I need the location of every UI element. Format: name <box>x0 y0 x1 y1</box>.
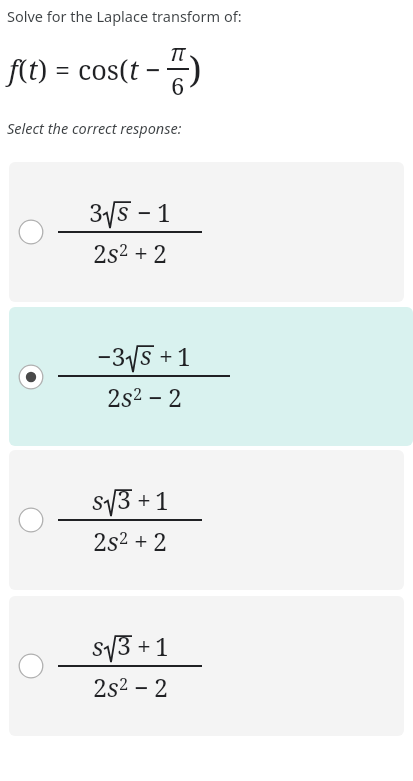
staticText: s <box>107 236 119 270</box>
staticText: + <box>134 524 148 558</box>
staticText: 2 <box>119 238 129 260</box>
staticText: π <box>170 36 186 68</box>
staticText: −3 <box>97 339 126 373</box>
staticText: Solve for the Laplace transform of: <box>7 6 242 26</box>
staticText: ( <box>18 51 28 88</box>
staticText: 3 <box>89 195 103 229</box>
staticText: 2 <box>153 524 167 558</box>
staticText: − <box>137 195 152 229</box>
staticText: 2 <box>107 380 121 414</box>
staticText: 6 <box>171 70 185 102</box>
staticText: = <box>55 51 71 88</box>
staticText: 2 <box>93 524 107 558</box>
staticText: 2 <box>168 380 182 414</box>
staticText: s <box>92 629 104 663</box>
staticText: s <box>92 483 104 517</box>
staticText: 2 <box>119 672 129 694</box>
staticText: + <box>159 339 173 373</box>
staticText: ) <box>189 44 202 94</box>
staticText: 2 <box>133 382 143 404</box>
staticText: s <box>117 194 129 228</box>
staticText: Select the correct response: <box>7 118 182 138</box>
button[interactable]: s <box>9 450 404 590</box>
staticText: − <box>134 670 149 704</box>
staticText: 1 <box>157 195 171 229</box>
staticText: s <box>107 524 119 558</box>
staticText: 3 <box>117 482 131 516</box>
staticText: 2 <box>93 236 107 270</box>
staticText: 2 <box>93 670 107 704</box>
button[interactable]: s <box>9 596 404 736</box>
staticText: − <box>148 380 163 414</box>
staticText: + <box>137 483 151 517</box>
staticText: cos( <box>78 51 129 88</box>
button[interactable]: −3 <box>9 307 413 446</box>
staticText: 2 <box>154 670 168 704</box>
staticText: 1 <box>155 629 169 663</box>
staticText: 1 <box>177 339 191 373</box>
staticText: 2 <box>119 526 129 548</box>
staticText: s <box>107 670 119 704</box>
staticText: + <box>137 629 151 663</box>
staticText: s <box>140 338 152 372</box>
staticText: ) <box>38 51 48 88</box>
button[interactable]: 3 <box>9 162 404 302</box>
staticText: 3 <box>117 628 131 662</box>
staticText: − <box>145 51 161 88</box>
staticText: t <box>28 51 38 88</box>
staticText: t <box>129 51 139 88</box>
staticText: 1 <box>155 483 169 517</box>
staticText: s <box>121 380 133 414</box>
staticText: f <box>9 51 18 88</box>
staticText: + <box>134 236 148 270</box>
staticText: 2 <box>153 236 167 270</box>
